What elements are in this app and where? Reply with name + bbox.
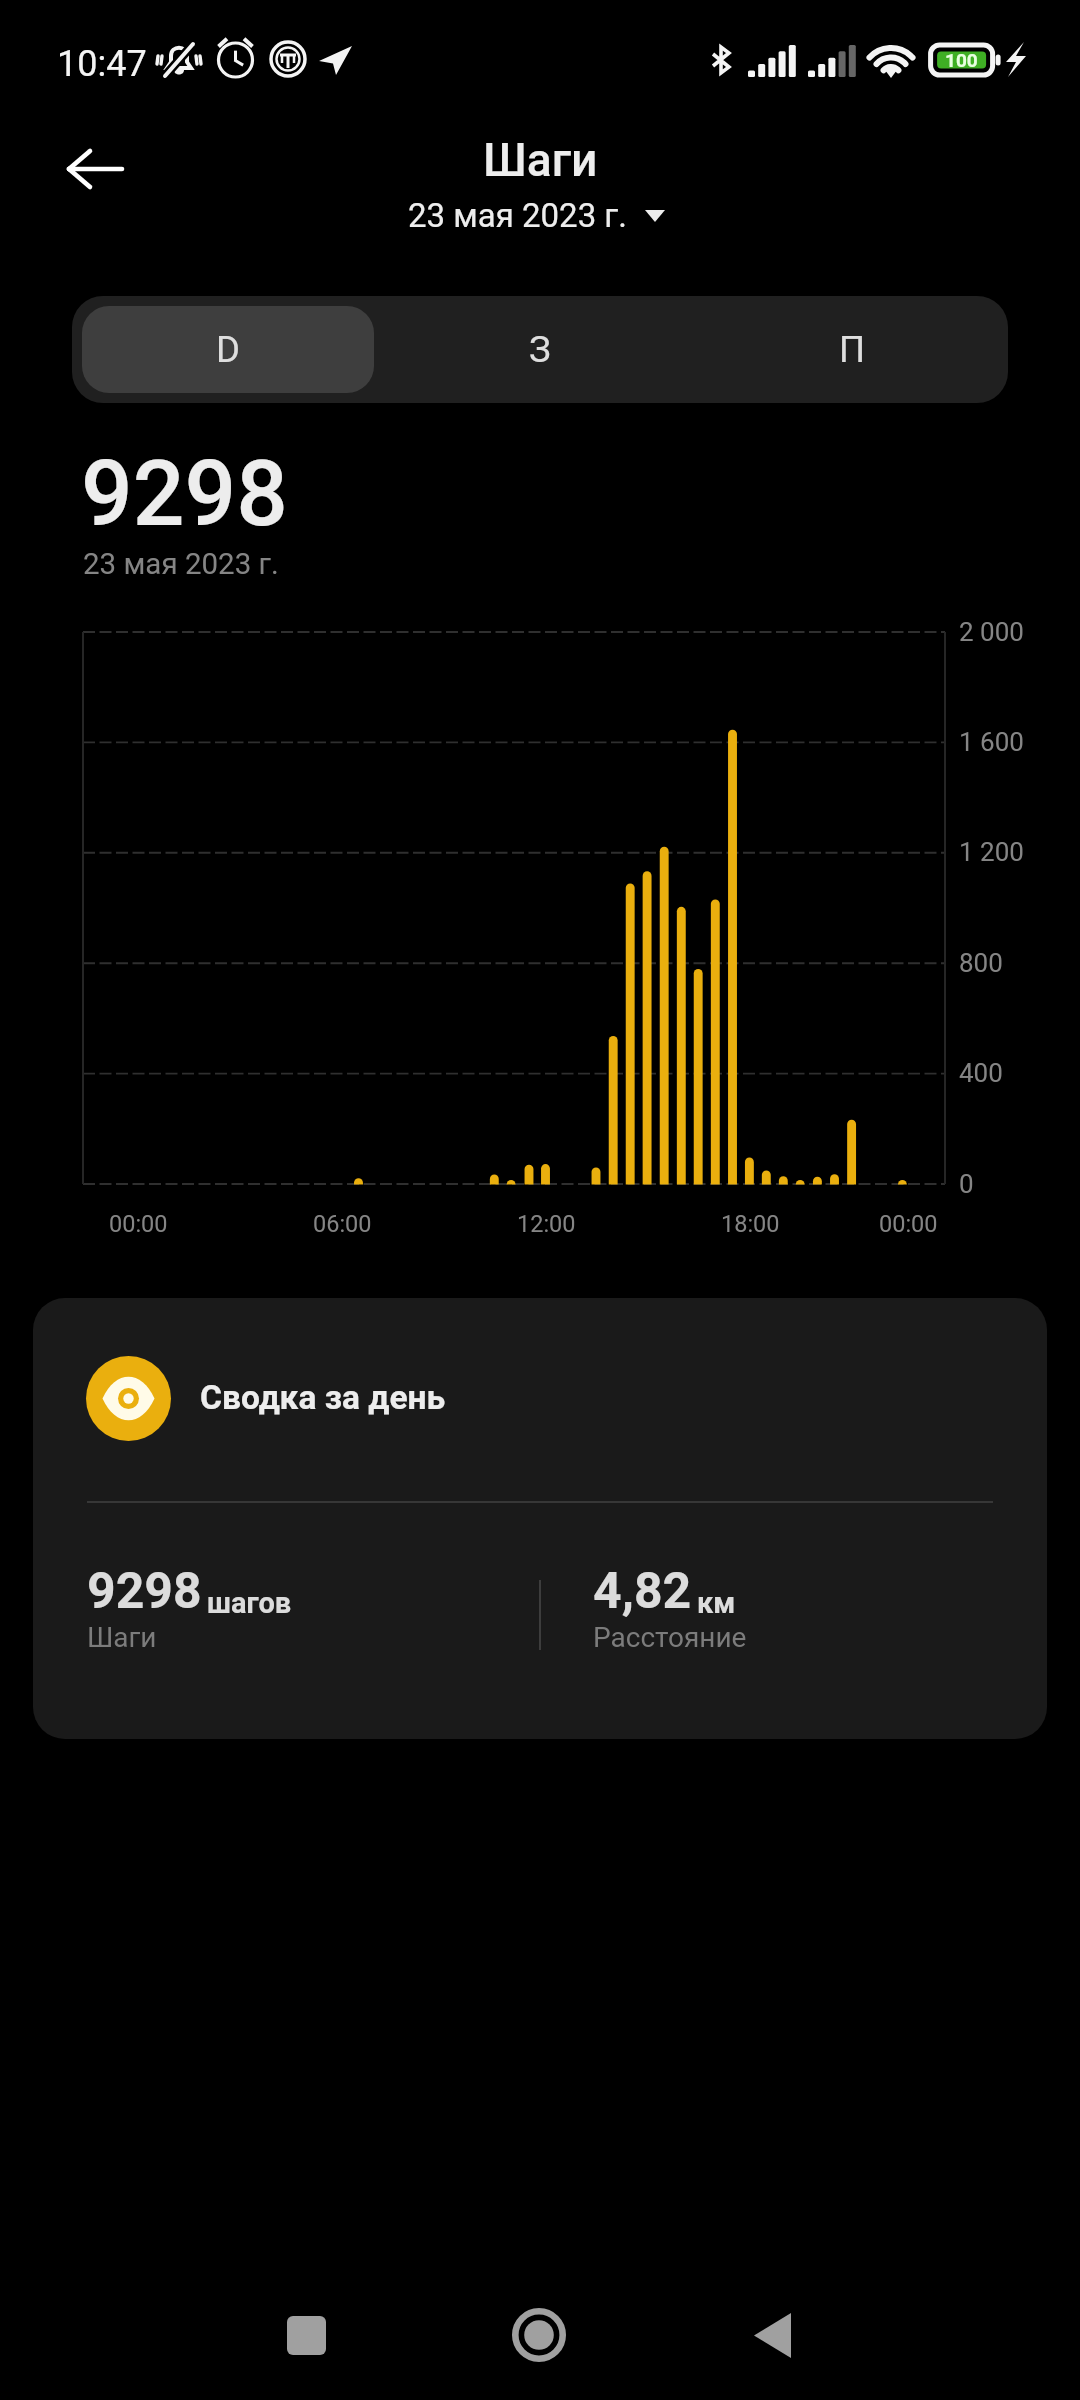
button[interactable]: Назад [51, 125, 140, 214]
button[interactable]: D [82, 306, 374, 393]
staticText: км [697, 1586, 736, 1620]
button[interactable]: Сводка за день [33, 1298, 1047, 1739]
staticText: шагов [207, 1586, 292, 1620]
staticText: Расстояние [593, 1621, 747, 1654]
button[interactable]: Back [727, 2290, 817, 2380]
staticText: 100 [945, 49, 978, 70]
staticText: 23 мая 2023 г. [83, 547, 279, 582]
button[interactable]: П [706, 306, 998, 393]
staticText: 00:00 [879, 1210, 938, 1238]
button[interactable]: З [394, 306, 686, 393]
staticText: 18:00 [721, 1210, 780, 1238]
staticText: 9298 [87, 1562, 202, 1621]
staticText: 10:47 [57, 43, 147, 85]
staticText: З [529, 328, 551, 371]
staticText: 06:00 [313, 1210, 372, 1238]
staticText: 400 [959, 1058, 1003, 1088]
staticText: D [216, 328, 240, 371]
staticText: 23 мая 2023 г. [408, 196, 627, 235]
staticText: Шаги [87, 1621, 157, 1654]
button[interactable]: Recents [261, 2290, 351, 2380]
staticText: 1 200 [959, 837, 1024, 867]
staticText: 12:00 [517, 1210, 576, 1238]
staticText: 00:00 [109, 1210, 168, 1238]
staticText: П [839, 328, 866, 371]
staticText: 0 [959, 1169, 974, 1199]
staticText: 4,82 [593, 1562, 692, 1621]
staticText: 1 600 [959, 727, 1024, 757]
staticText: Сводка за день [200, 1378, 446, 1417]
staticText: 2 000 [959, 617, 1024, 647]
staticText: 9298 [81, 441, 288, 548]
staticText: 800 [959, 948, 1003, 978]
staticText: Шаги [483, 133, 598, 187]
button[interactable]: Home [494, 2290, 584, 2380]
